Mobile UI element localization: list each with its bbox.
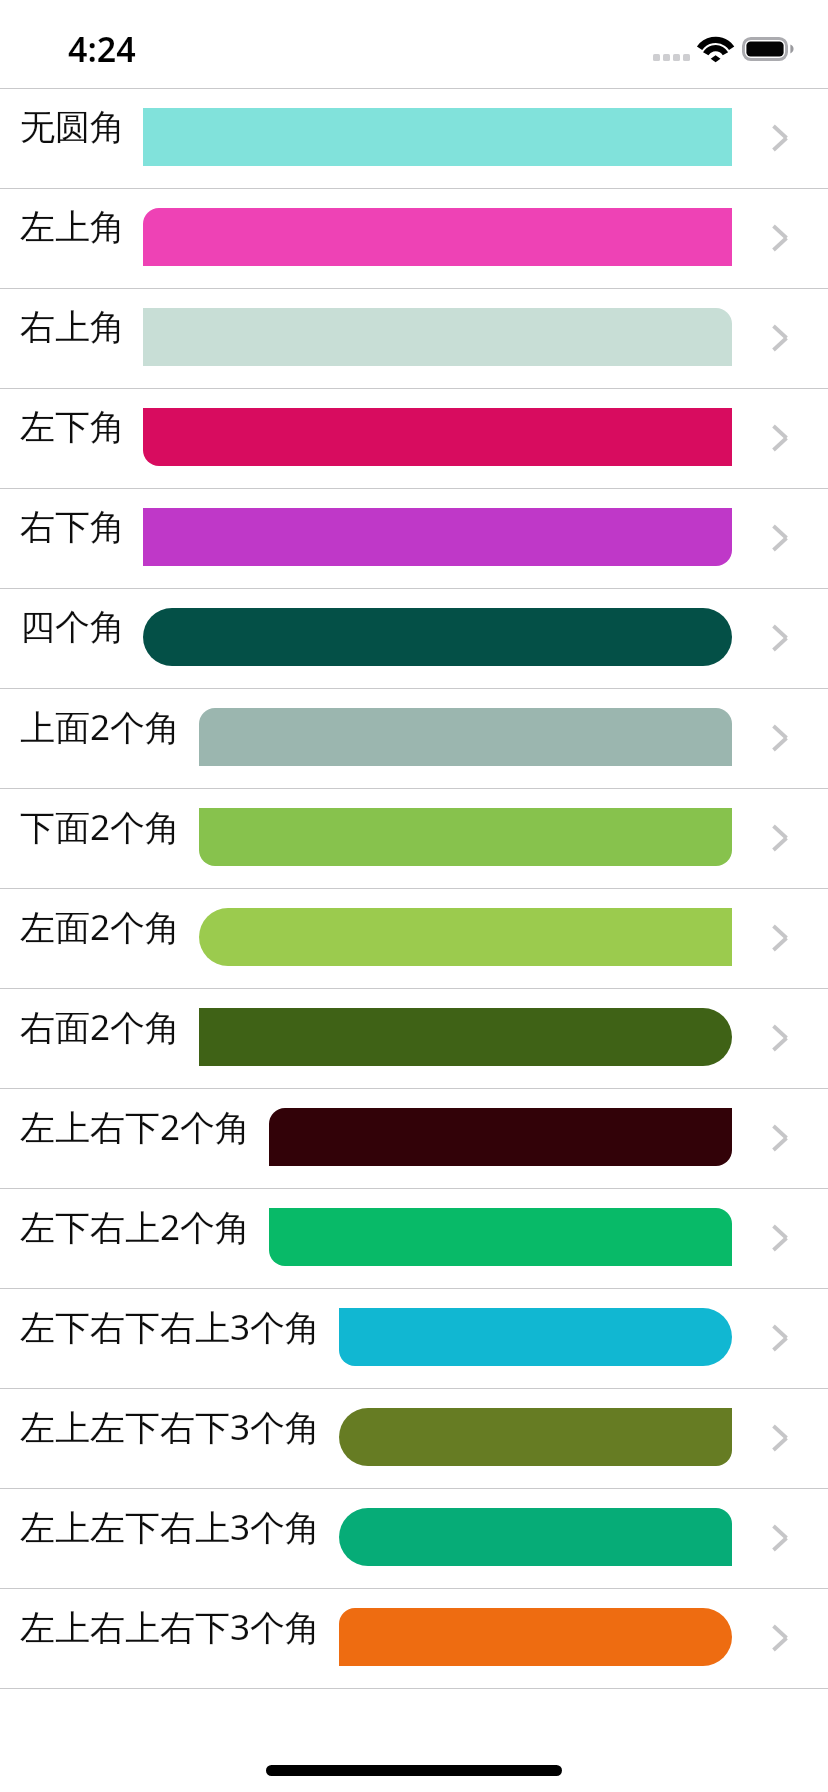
button[interactable]: 右上角 xyxy=(0,289,828,388)
other: Open detail xyxy=(732,1625,828,1653)
staticText: 4:24 xyxy=(68,26,136,72)
staticText: 左上右上右下3个角 xyxy=(20,1603,321,1651)
other: Open detail xyxy=(732,825,828,853)
other: Open detail xyxy=(732,225,828,253)
other: Open detail xyxy=(732,325,828,353)
staticText: 左上左下右下3个角 xyxy=(20,1403,321,1451)
staticText: 左面2个角 xyxy=(20,903,181,951)
staticText: 左下右上2个角 xyxy=(20,1203,251,1251)
staticText: 右下角 xyxy=(20,505,125,549)
button[interactable]: 右下角 xyxy=(0,489,828,588)
staticText: 右面2个角 xyxy=(20,1003,181,1051)
staticText: 无圆角 xyxy=(20,105,125,149)
button[interactable]: 左上右下2个角 xyxy=(0,1089,828,1188)
button[interactable]: 左上角 xyxy=(0,189,828,288)
staticText: 下面2个角 xyxy=(20,803,181,851)
other: Open detail xyxy=(732,1025,828,1053)
staticText: 右上角 xyxy=(20,305,125,349)
button[interactable]: 四个角 xyxy=(0,589,828,688)
other: Open detail xyxy=(732,425,828,453)
staticText: 左上右下2个角 xyxy=(20,1103,251,1151)
other: Open detail xyxy=(732,1525,828,1553)
staticText: 上面2个角 xyxy=(20,703,181,751)
button[interactable]: 左上左下右上3个角 xyxy=(0,1489,828,1588)
staticText: 左上左下右上3个角 xyxy=(20,1503,321,1551)
other: Open detail xyxy=(732,1125,828,1153)
button[interactable]: 左下右上2个角 xyxy=(0,1189,828,1288)
other: Open detail xyxy=(732,525,828,553)
other: Open detail xyxy=(732,125,828,153)
button[interactable]: 上面2个角 xyxy=(0,689,828,788)
staticText: 四个角 xyxy=(20,605,125,649)
staticText: 左下右下右上3个角 xyxy=(20,1303,321,1351)
button[interactable]: 右面2个角 xyxy=(0,989,828,1088)
button[interactable]: 左上右上右下3个角 xyxy=(0,1589,828,1688)
button[interactable]: 左上左下右下3个角 xyxy=(0,1389,828,1488)
staticText: 左上角 xyxy=(20,205,125,249)
button[interactable]: 左面2个角 xyxy=(0,889,828,988)
other: Open detail xyxy=(732,625,828,653)
button[interactable]: 无圆角 xyxy=(0,89,828,188)
button[interactable]: 左下右下右上3个角 xyxy=(0,1289,828,1388)
other: Open detail xyxy=(732,925,828,953)
other: Open detail xyxy=(732,1225,828,1253)
button[interactable]: 下面2个角 xyxy=(0,789,828,888)
staticText: 左下角 xyxy=(20,405,125,449)
other: Open detail xyxy=(732,1325,828,1353)
other: Open detail xyxy=(732,725,828,753)
other: Open detail xyxy=(732,1425,828,1453)
button[interactable]: 左下角 xyxy=(0,389,828,488)
